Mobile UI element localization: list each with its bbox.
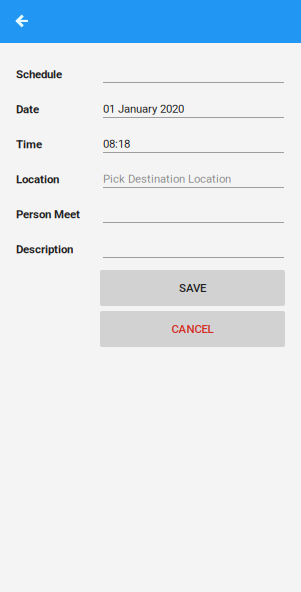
staticText: Pick Destination Location <box>103 172 231 186</box>
staticText: Schedule <box>16 68 62 81</box>
staticText: SAVE <box>179 281 206 295</box>
button[interactable]: Date <box>0 83 301 118</box>
staticText: 01 January 2020 <box>103 102 184 116</box>
staticText: 08:18 <box>103 137 130 151</box>
button[interactable]: Description <box>0 223 301 258</box>
staticText: Date <box>16 103 39 116</box>
staticText: Description <box>16 243 73 256</box>
button[interactable]: Location <box>0 153 301 188</box>
button[interactable]: SAVE <box>100 270 285 306</box>
button[interactable]: Time <box>0 118 301 153</box>
staticText: Time <box>16 138 42 151</box>
staticText: Person Meet <box>16 208 80 221</box>
staticText: Location <box>16 173 59 186</box>
button[interactable]: Back <box>6 0 36 42</box>
button[interactable]: CANCEL <box>100 311 285 347</box>
button[interactable]: Schedule <box>0 48 301 83</box>
staticText: CANCEL <box>171 322 213 336</box>
button[interactable]: Person Meet <box>0 188 301 223</box>
